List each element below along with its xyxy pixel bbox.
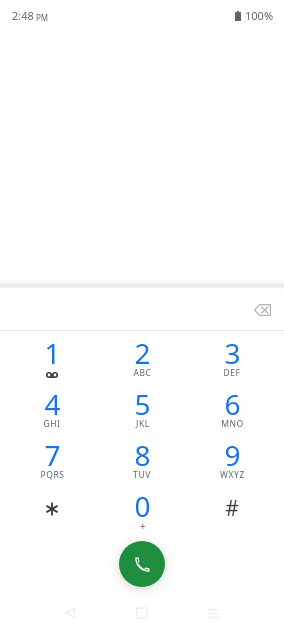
staticText: PM (36, 12, 49, 23)
staticText: 5 (134, 385, 151, 423)
staticText: 1 (44, 334, 61, 372)
staticText: TUV (133, 469, 151, 481)
staticText: # (225, 494, 239, 523)
staticText: 7 (44, 436, 61, 474)
button[interactable]: 0 (97, 487, 187, 538)
button[interactable] (7, 487, 97, 538)
button[interactable]: Home (124, 598, 160, 628)
button[interactable]: 2 (97, 334, 187, 385)
staticText: WXYZ (220, 469, 245, 481)
button[interactable]: 1 (7, 334, 97, 385)
button[interactable]: 3 (187, 334, 277, 385)
staticText: 2:48 (12, 8, 34, 23)
staticText: + (140, 519, 146, 532)
button[interactable]: 4 (7, 385, 97, 436)
button[interactable]: 5 (97, 385, 187, 436)
button[interactable]: 8 (97, 436, 187, 487)
staticText: 4 (44, 385, 61, 423)
staticText: 6 (224, 385, 241, 423)
staticText: 9 (224, 436, 241, 474)
staticText: GHI (43, 418, 61, 430)
staticText: MNO (221, 418, 244, 430)
staticText: 8 (134, 436, 151, 474)
button[interactable]: 9 (187, 436, 277, 487)
staticText: PQRS (40, 469, 65, 481)
button[interactable]: # (187, 487, 277, 538)
staticText: ABC (133, 367, 152, 379)
button[interactable]: 7 (7, 436, 97, 487)
button[interactable]: Backspace (247, 295, 277, 325)
button[interactable]: 6 (187, 385, 277, 436)
staticText: 100% (245, 8, 274, 23)
staticText: 0 (134, 487, 151, 525)
staticText: 2 (134, 334, 151, 372)
staticText: JKL (136, 418, 150, 430)
button[interactable]: Call (119, 541, 165, 587)
staticText: DEF (223, 367, 241, 379)
staticText: 3 (224, 334, 241, 372)
